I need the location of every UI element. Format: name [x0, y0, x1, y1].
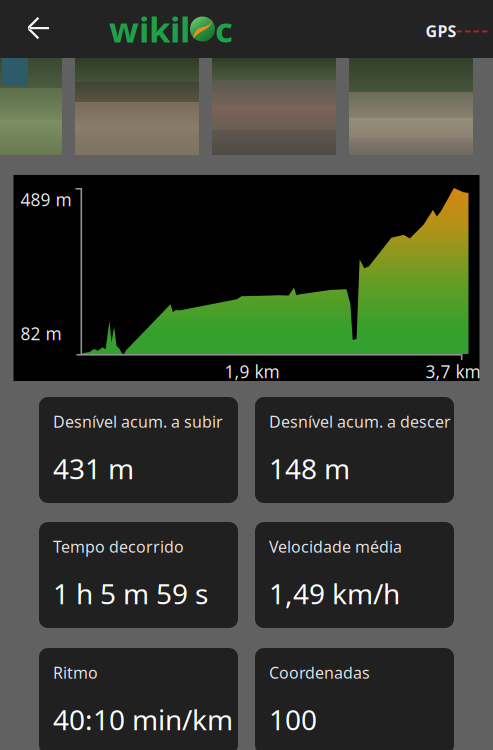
staticText: 148 m [269, 450, 350, 487]
staticText: 1 h 5 m 59 s [53, 575, 208, 612]
staticText: c [215, 6, 233, 52]
staticText: 431 m [53, 450, 134, 487]
staticText: wikil [109, 6, 190, 52]
staticText: 1,9 km [224, 360, 279, 383]
button[interactable]: Tempo decorrido [39, 522, 238, 628]
staticText: 100 [269, 701, 317, 738]
staticText: Desnível acum. a descer [269, 411, 451, 432]
button[interactable]: Desnível acum. a subir [39, 397, 238, 503]
staticText: 82 m [20, 322, 61, 345]
staticText: Velocidade média [269, 536, 402, 557]
button[interactable]: Trail photo 3 [212, 58, 336, 155]
staticText: Coordenadas [269, 662, 370, 683]
staticText: Ritmo [53, 662, 98, 683]
button[interactable]: Desnível acum. a descer [255, 397, 454, 503]
button[interactable]: GPS signal status [430, 1, 493, 57]
button[interactable]: Trail photo 2 [75, 58, 199, 155]
button[interactable]: Trail photo 4 [349, 58, 473, 155]
staticText: 1,49 km/h [269, 575, 400, 612]
button[interactable]: Trail photo 1 [0, 58, 62, 155]
staticText: 489 m [20, 188, 71, 211]
staticText: 40:10 min/km [53, 701, 233, 738]
staticText: Desnível acum. a subir [53, 411, 223, 432]
staticText: 3,7 km [425, 360, 480, 383]
staticText: Tempo decorrido [53, 536, 184, 557]
button[interactable]: Back [0, 1, 109, 57]
button[interactable]: Ritmo [39, 648, 238, 750]
button[interactable]: Velocidade média [255, 522, 454, 628]
staticText: GPS [425, 20, 456, 42]
button[interactable]: Coordenadas [255, 648, 454, 750]
